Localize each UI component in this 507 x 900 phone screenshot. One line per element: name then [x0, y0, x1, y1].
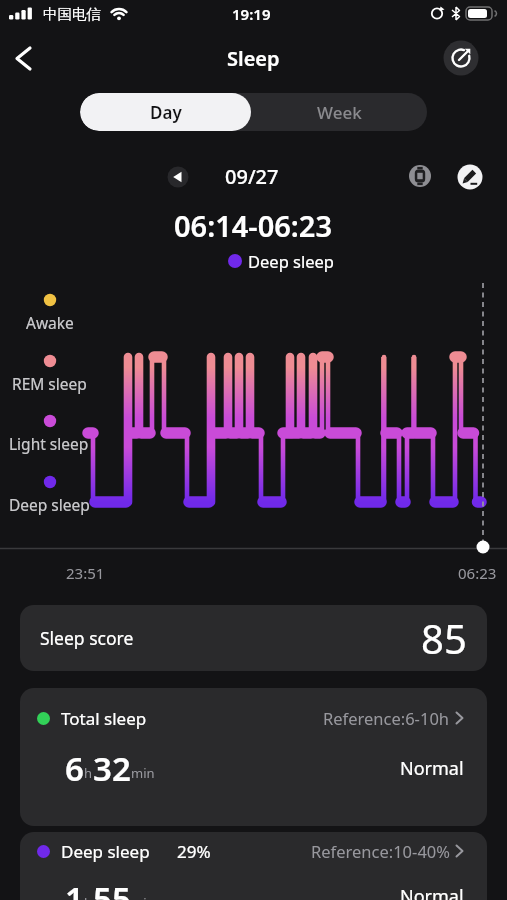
button[interactable]: Reference:6-10h	[20, 702, 487, 734]
staticText: min	[131, 764, 155, 782]
staticText: Reference:6-10h	[323, 707, 450, 729]
button[interactable]	[441, 38, 481, 78]
staticText: 19:19	[232, 4, 271, 24]
staticText: 1	[65, 876, 84, 900]
staticText: Sleep score	[40, 626, 134, 650]
button[interactable]: Day	[80, 93, 251, 131]
staticText: Light sleep	[9, 433, 89, 454]
staticText: Sleep	[227, 45, 280, 72]
staticText: Normal	[400, 884, 464, 900]
staticText: 23:51	[66, 563, 105, 583]
staticText: Day	[150, 101, 182, 124]
button[interactable]	[164, 163, 192, 191]
button[interactable]: Reference:10-40%	[20, 835, 487, 867]
staticText: REM sleep	[12, 373, 87, 394]
staticText: Deep sleep	[9, 494, 90, 515]
staticText: 32	[93, 746, 131, 791]
button[interactable]	[456, 163, 484, 191]
staticText: Awake	[26, 312, 74, 333]
button[interactable]: Week	[251, 93, 427, 131]
staticText: Deep sleep	[248, 250, 335, 272]
staticText: 6	[65, 746, 84, 791]
button[interactable]: Deep sleep	[37, 835, 211, 867]
button[interactable]: Sleep score	[20, 605, 487, 671]
staticText: 09/27	[225, 163, 279, 190]
staticText: h	[84, 894, 93, 900]
staticText: Week	[317, 101, 362, 124]
staticText: 85	[421, 611, 467, 665]
staticText: Reference:10-40%	[311, 840, 450, 862]
button[interactable]	[8, 42, 44, 76]
staticText: 29%	[177, 840, 211, 863]
staticText: Total sleep	[61, 707, 147, 730]
staticText: min	[131, 894, 155, 900]
staticText: 中国电信	[43, 5, 101, 23]
button[interactable]: Total sleep	[37, 702, 147, 734]
staticText: Deep sleep	[61, 840, 150, 863]
staticText: 55	[93, 876, 131, 900]
staticText: 06:14-06:23	[174, 206, 332, 245]
staticText: h	[84, 764, 93, 782]
staticText: Normal	[400, 756, 464, 781]
staticText: 06:23	[458, 563, 497, 583]
button[interactable]	[406, 162, 434, 190]
